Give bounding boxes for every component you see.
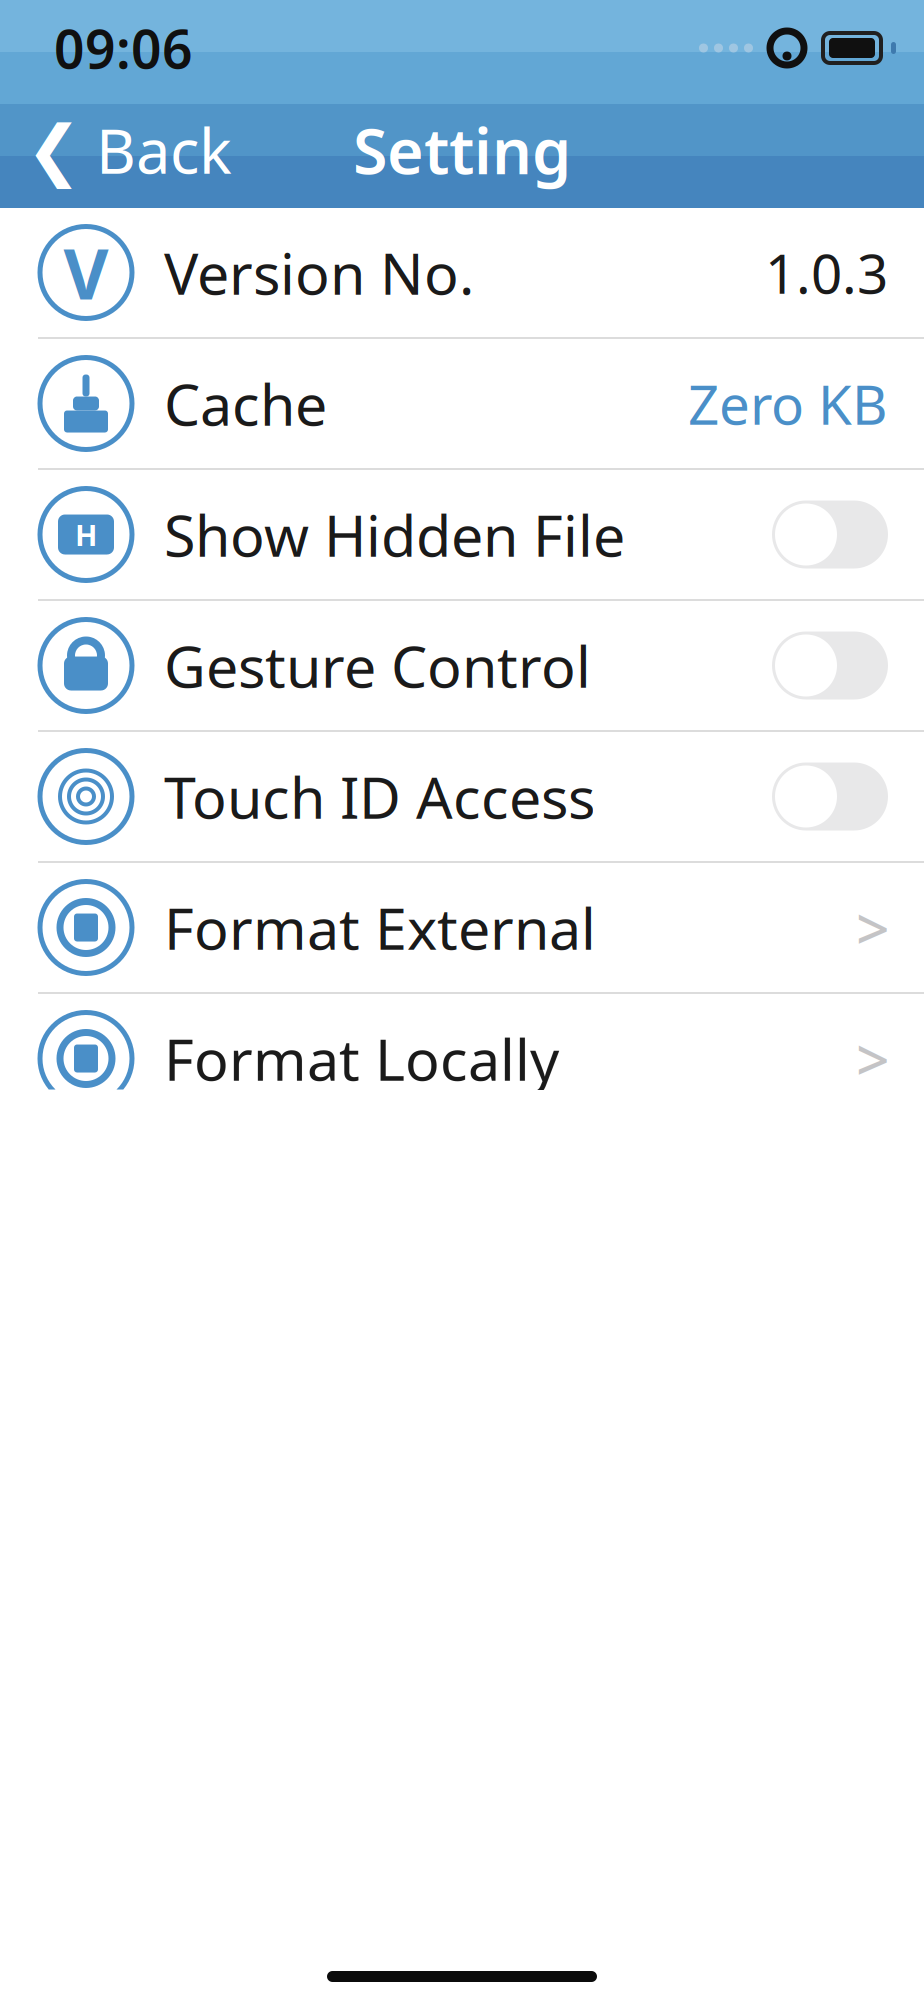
staticText: 09:06 <box>54 13 193 83</box>
staticText: Setting <box>353 108 571 192</box>
button[interactable]: Gesture Control <box>0 601 924 732</box>
staticText: Format Locally <box>164 1020 559 1096</box>
staticText: Show Hidden File <box>164 496 625 572</box>
button[interactable]: Format External <box>0 863 924 994</box>
staticText: Touch ID Access <box>164 758 595 834</box>
staticText: > <box>856 1019 890 1097</box>
button[interactable]: Cache <box>0 339 924 470</box>
staticText: Gesture Control <box>164 627 591 703</box>
staticText: 1.0.3 <box>765 236 888 309</box>
button[interactable]: V <box>0 208 924 339</box>
staticText: V <box>63 226 108 319</box>
staticText: Back <box>96 109 232 191</box>
button[interactable]: ❮ <box>0 104 252 196</box>
button[interactable]: H <box>0 470 924 601</box>
button[interactable]: Touch ID Access <box>0 732 924 863</box>
staticText: Cache <box>164 365 327 441</box>
staticText: Version No. <box>164 234 474 310</box>
staticText: Format External <box>164 889 596 965</box>
staticText: H <box>75 515 97 554</box>
staticText: Zero KB <box>688 367 888 440</box>
staticText: > <box>856 888 890 966</box>
staticText: ❮ <box>26 112 82 188</box>
button[interactable]: Format Locally <box>0 994 924 1125</box>
